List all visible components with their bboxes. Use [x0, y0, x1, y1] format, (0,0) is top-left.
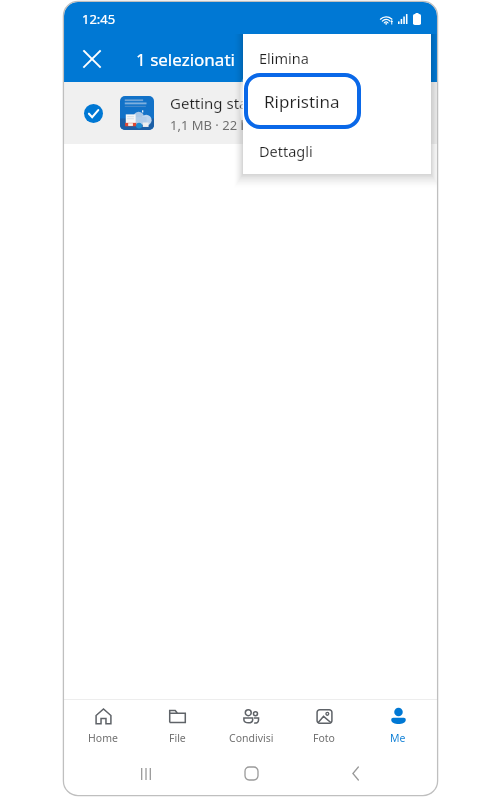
button[interactable]: Home [68, 700, 138, 752]
staticText: Elimina [259, 48, 309, 68]
staticText: File [169, 731, 186, 745]
staticText: Getting started with OneDrive.pdf [170, 93, 410, 113]
staticText: Ripristina [264, 90, 340, 113]
button[interactable]: Ripristina [240, 69, 365, 133]
staticText: Home [88, 731, 118, 745]
staticText: Foto [313, 731, 335, 745]
button[interactable]: Condivisi [216, 700, 286, 752]
button[interactable]: Getting started with OneDrive.pdf [64, 82, 437, 144]
button[interactable]: Dettagli [243, 127, 431, 174]
button[interactable]: Chiudi [72, 39, 112, 79]
button[interactable]: Home [229, 752, 273, 795]
staticText: Condivisi [229, 731, 274, 745]
button[interactable] [243, 81, 431, 127]
staticText: 12:45 [82, 10, 116, 28]
button[interactable]: Elimina [243, 34, 431, 81]
staticText: Me [390, 731, 406, 745]
button[interactable]: Indietro [333, 752, 377, 795]
staticText: 1 selezionati [136, 48, 235, 71]
staticText: 1,1 MB · 22 lug [170, 116, 260, 134]
button[interactable]: File [142, 700, 212, 752]
button[interactable]: Me [363, 700, 433, 752]
button[interactable]: Recenti [124, 752, 168, 795]
button[interactable]: Foto [289, 700, 359, 752]
staticText: Dettagli [259, 141, 313, 161]
